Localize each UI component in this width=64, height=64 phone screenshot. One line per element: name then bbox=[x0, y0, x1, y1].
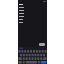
button[interactable] bbox=[19, 3, 47, 6]
button[interactable] bbox=[19, 15, 47, 18]
button[interactable] bbox=[19, 9, 47, 12]
button[interactable]: Keyboard bbox=[18, 47, 47, 64]
button[interactable] bbox=[19, 18, 47, 21]
button[interactable] bbox=[19, 6, 47, 9]
button[interactable] bbox=[39, 43, 45, 46]
button[interactable] bbox=[19, 21, 47, 24]
button[interactable] bbox=[19, 12, 47, 15]
